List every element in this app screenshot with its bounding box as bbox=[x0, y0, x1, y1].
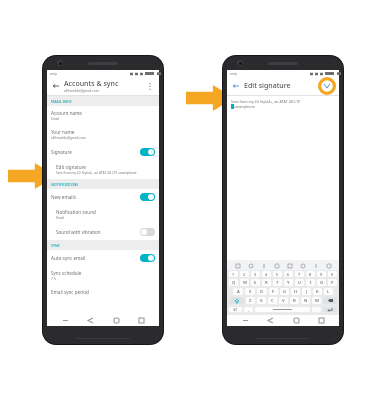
button[interactable]: Signature bbox=[47, 144, 159, 160]
button[interactable]: New emails bbox=[47, 189, 159, 205]
button[interactable]: Keyboard tool 7 bbox=[324, 261, 333, 270]
staticText: !#1 bbox=[233, 308, 238, 312]
button[interactable]: More options bbox=[145, 81, 155, 91]
button[interactable]: Back bbox=[51, 81, 61, 91]
staticText: Sent from my LG Stylo4+, an AT&T 4G LTE bbox=[231, 99, 301, 104]
button[interactable]: O bbox=[317, 279, 326, 286]
button[interactable]: Recents bbox=[134, 315, 148, 326]
staticText: . bbox=[316, 307, 317, 312]
button[interactable]: . bbox=[312, 307, 321, 312]
staticText: Auto-sync email bbox=[51, 255, 86, 261]
button[interactable]: J bbox=[302, 288, 311, 295]
button[interactable]: 6 bbox=[284, 271, 293, 277]
button[interactable]: T bbox=[273, 279, 282, 286]
button[interactable]: B bbox=[290, 297, 299, 304]
button[interactable]: Auto-sync email bbox=[47, 250, 159, 266]
button[interactable]: 8 bbox=[306, 271, 315, 277]
button[interactable]: Back bbox=[263, 315, 277, 326]
button[interactable]: Z bbox=[246, 297, 255, 304]
button[interactable]: Keyboard tool 6 bbox=[311, 261, 320, 270]
button[interactable]: Sound with vibration bbox=[47, 224, 159, 240]
button[interactable]: 4 bbox=[262, 271, 271, 277]
button[interactable]: U bbox=[295, 279, 304, 286]
button[interactable]: Key bbox=[323, 307, 337, 312]
button[interactable]: Save signature bbox=[317, 77, 337, 95]
button[interactable]: W bbox=[240, 279, 249, 286]
staticText: Edit signature bbox=[244, 81, 291, 91]
button[interactable]: Back bbox=[83, 315, 97, 326]
staticText: 3 bbox=[254, 272, 257, 277]
button[interactable]: Keyboard tool 5 bbox=[298, 261, 307, 270]
button[interactable]: Account name bbox=[47, 106, 159, 125]
button[interactable]: Key bbox=[323, 297, 337, 304]
button[interactable]: C bbox=[268, 297, 277, 304]
button[interactable]: L bbox=[324, 288, 333, 295]
staticText: G bbox=[283, 289, 287, 295]
staticText: 2 bbox=[243, 272, 246, 277]
staticText: Notification sound bbox=[56, 209, 96, 215]
button[interactable]: H bbox=[291, 288, 300, 295]
button[interactable]: Home bbox=[109, 315, 123, 326]
staticText: F bbox=[272, 289, 275, 295]
button[interactable]: Keyboard tool 4 bbox=[285, 261, 294, 270]
button[interactable]: Keyboard tool 3 bbox=[272, 261, 281, 270]
button[interactable]: Back bbox=[231, 81, 241, 91]
button[interactable]: 0 bbox=[328, 271, 337, 277]
button[interactable]: Email sync period bbox=[47, 285, 159, 299]
staticText: 0 bbox=[331, 272, 334, 277]
staticText: smartphone bbox=[234, 104, 255, 109]
staticText: 7 bbox=[298, 272, 301, 277]
button[interactable]: Your name bbox=[47, 125, 159, 144]
button[interactable]: Notification sound bbox=[47, 205, 159, 224]
button[interactable]: Space bbox=[255, 307, 310, 312]
button[interactable]: R bbox=[262, 279, 271, 286]
staticText: S bbox=[249, 289, 252, 295]
button[interactable]: G bbox=[280, 288, 289, 295]
button[interactable]: 5 bbox=[273, 271, 282, 277]
button[interactable]: Keyboard tool 0 bbox=[233, 261, 242, 270]
button[interactable]: P bbox=[328, 279, 337, 286]
staticText: 8 bbox=[309, 272, 312, 277]
button[interactable]: S bbox=[245, 288, 255, 295]
button[interactable]: N bbox=[301, 297, 310, 304]
button[interactable]: Home bbox=[289, 315, 303, 326]
button[interactable]: Menu bbox=[238, 315, 252, 326]
staticText: Sound with vibration bbox=[56, 229, 101, 235]
button[interactable]: Recents bbox=[314, 315, 328, 326]
button[interactable]: , bbox=[244, 307, 253, 312]
staticText: T bbox=[276, 280, 279, 286]
button[interactable]: Keyboard tool 1 bbox=[246, 261, 255, 270]
button[interactable]: M bbox=[312, 297, 321, 304]
button[interactable]: 1 bbox=[229, 271, 238, 277]
button[interactable]: D bbox=[257, 288, 267, 295]
button[interactable]: E bbox=[251, 279, 260, 286]
button[interactable]: 2 bbox=[240, 271, 249, 277]
button[interactable]: K bbox=[313, 288, 322, 295]
button[interactable]: Keyboard tool 2 bbox=[259, 261, 268, 270]
staticText: Accounts & sync bbox=[64, 79, 119, 89]
staticText: K bbox=[316, 289, 319, 295]
button[interactable]: 9 bbox=[317, 271, 326, 277]
staticText: Signature bbox=[51, 149, 72, 155]
button[interactable]: A bbox=[233, 288, 243, 295]
staticText: Your name bbox=[51, 129, 75, 135]
button[interactable]: I bbox=[306, 279, 315, 286]
staticText: EMAIL INFO bbox=[51, 99, 72, 104]
staticText: N bbox=[304, 298, 308, 304]
button[interactable]: Q bbox=[229, 279, 238, 286]
button[interactable]: 7 bbox=[295, 271, 304, 277]
button[interactable]: Edit signature bbox=[47, 160, 159, 179]
button[interactable]: 3 bbox=[251, 271, 260, 277]
staticText: Email bbox=[56, 216, 65, 220]
button[interactable]: X bbox=[257, 297, 266, 304]
button[interactable]: Menu bbox=[58, 315, 72, 326]
button[interactable]: !#1 bbox=[229, 307, 242, 312]
button[interactable]: F bbox=[269, 288, 278, 295]
button[interactable]: V bbox=[279, 297, 288, 304]
button[interactable]: Y bbox=[284, 279, 293, 286]
other: Arrow bbox=[8, 163, 56, 189]
button[interactable]: Key bbox=[229, 297, 244, 304]
staticText: 6 bbox=[287, 272, 290, 277]
staticText: E bbox=[254, 280, 257, 286]
button[interactable]: Sync schedule bbox=[47, 266, 159, 285]
